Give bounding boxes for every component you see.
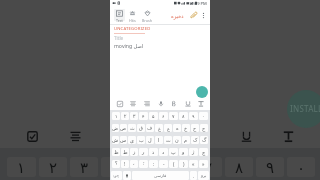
- button[interactable]: ن: [173, 136, 181, 144]
- button[interactable]: (: [169, 160, 178, 168]
- staticText: ۲: [124, 114, 127, 119]
- staticText: ۵: [142, 159, 151, 176]
- button[interactable]: ۰: [199, 112, 208, 120]
- button[interactable]: ): [179, 160, 188, 168]
- staticText: م: [184, 137, 188, 143]
- button[interactable]: ث: [128, 124, 136, 132]
- button[interactable]: ؛: [139, 160, 148, 168]
- button[interactable]: ز: [130, 148, 138, 156]
- button[interactable]: Install: [287, 90, 320, 128]
- button[interactable]: »: [199, 160, 208, 168]
- staticText: ک: [193, 137, 198, 143]
- staticText: .: [193, 173, 195, 179]
- button[interactable]: ی: [128, 136, 136, 144]
- button[interactable]: پ: [169, 148, 178, 156]
- staticText: ی: [130, 137, 134, 143]
- button[interactable]: ض: [112, 124, 119, 132]
- button[interactable]: Attach file: [188, 10, 198, 20]
- button[interactable]: ،: [130, 160, 138, 168]
- button[interactable]: ۴: [139, 112, 148, 120]
- button[interactable]: ه: [173, 124, 181, 132]
- button[interactable]: ۳: [130, 112, 138, 120]
- staticText: ۳: [80, 159, 89, 176]
- button[interactable]: س: [120, 136, 127, 144]
- button[interactable]: Text: [113, 8, 126, 22]
- button[interactable]: Bulleted list: [128, 99, 137, 108]
- button[interactable]: :: [149, 160, 158, 168]
- button[interactable]: ر: [139, 148, 148, 156]
- button[interactable]: ۵: [149, 112, 158, 120]
- button[interactable]: «: [189, 160, 198, 168]
- button[interactable]: ش: [112, 136, 119, 144]
- staticText: (: [173, 161, 175, 168]
- staticText: ش: [112, 137, 119, 143]
- button[interactable]: ؟: [112, 160, 120, 168]
- button[interactable]: ک: [191, 136, 199, 144]
- button[interactable]: ژ: [189, 148, 198, 156]
- button[interactable]: Go: [198, 171, 209, 180]
- staticText: ژ: [192, 149, 195, 155]
- button[interactable]: چ: [199, 148, 208, 156]
- button[interactable]: ظ: [112, 148, 120, 156]
- staticText: ج: [202, 125, 206, 131]
- staticText: ؟۱۲: [113, 174, 120, 178]
- other: Voice input: [149, 125, 171, 147]
- button[interactable]: Hits: [126, 8, 139, 22]
- button[interactable]: ۷: [169, 112, 178, 120]
- button[interactable]: Bold: [169, 99, 178, 108]
- button[interactable]: ل: [146, 136, 154, 144]
- button[interactable]: و: [179, 148, 188, 156]
- button[interactable]: ص: [120, 124, 127, 132]
- staticText: گ: [202, 137, 207, 143]
- button[interactable]: ق: [137, 124, 145, 132]
- staticText: ۹: [266, 159, 275, 176]
- button[interactable]: Checklist: [115, 99, 124, 108]
- button[interactable]: ب: [137, 136, 145, 144]
- button[interactable]: ۸: [179, 112, 188, 120]
- button[interactable]: Voice input: [123, 171, 131, 180]
- button[interactable]: Period: [190, 171, 197, 180]
- button[interactable]: ط: [121, 148, 129, 156]
- button[interactable]: UNCATEGORIZED: [114, 26, 151, 34]
- button[interactable]: ح: [191, 124, 199, 132]
- other: Checklist: [21, 125, 43, 147]
- button[interactable]: ۲: [121, 112, 129, 120]
- button[interactable]: ا: [155, 136, 163, 144]
- button[interactable]: د: [159, 148, 168, 156]
- staticText: UNCATEGORIZED: [114, 26, 151, 32]
- button[interactable]: !: [121, 160, 129, 168]
- button[interactable]: More options: [198, 10, 208, 20]
- button[interactable]: ت: [164, 136, 172, 144]
- staticText: چ: [202, 149, 206, 155]
- button[interactable]: ۱: [112, 112, 120, 120]
- button[interactable]: Underline: [183, 99, 192, 108]
- staticText: ): [183, 161, 185, 168]
- button[interactable]: ذخیره: [171, 9, 184, 22]
- staticText: ۴: [111, 159, 120, 176]
- button[interactable]: ۹: [189, 112, 198, 120]
- button[interactable]: -: [159, 160, 168, 168]
- button[interactable]: Text style: [196, 99, 205, 108]
- button[interactable]: خ: [182, 124, 190, 132]
- button[interactable]: Align: [142, 99, 151, 108]
- staticText: ،: [133, 161, 135, 167]
- staticText: ظ: [114, 149, 119, 155]
- button[interactable]: ۶: [159, 112, 168, 120]
- button[interactable]: Voice input: [156, 99, 165, 108]
- button[interactable]: ع: [164, 124, 172, 132]
- button[interactable]: ذ: [149, 148, 158, 156]
- button[interactable]: Brush: [140, 8, 153, 22]
- button[interactable]: م: [182, 136, 190, 144]
- staticText: !: [124, 161, 126, 168]
- staticText: ا: [158, 137, 160, 143]
- staticText: ۴: [142, 114, 145, 119]
- button[interactable]: ف: [146, 124, 154, 132]
- button[interactable]: ج: [200, 124, 208, 132]
- button[interactable]: Space: [132, 171, 189, 180]
- button[interactable]: Add note: [196, 86, 208, 98]
- button[interactable]: Symbols: [111, 171, 122, 180]
- button[interactable]: غ: [155, 124, 163, 132]
- staticText: غ: [158, 125, 161, 131]
- staticText: ل: [148, 137, 152, 143]
- button[interactable]: گ: [200, 136, 208, 144]
